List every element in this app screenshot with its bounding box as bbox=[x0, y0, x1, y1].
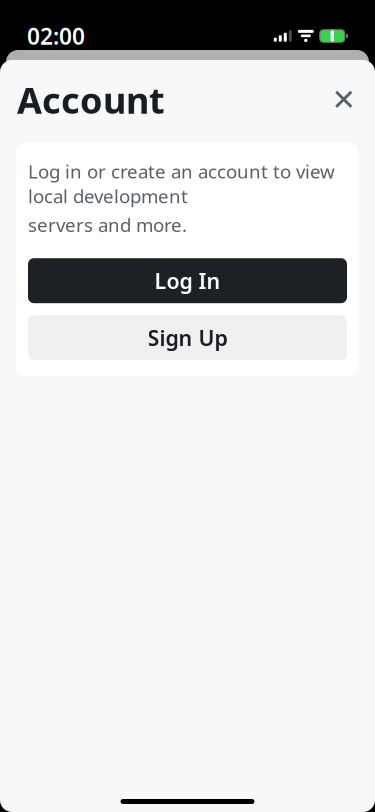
staticText: servers and more. bbox=[28, 212, 187, 237]
staticText: Log In bbox=[154, 266, 220, 295]
staticText: 02:00 bbox=[27, 21, 85, 51]
staticText: Sign Up bbox=[147, 323, 227, 352]
staticText: Log in or create an account to view loca… bbox=[28, 159, 335, 208]
staticText: Account bbox=[17, 76, 165, 124]
staticText: ✕ bbox=[331, 83, 356, 117]
button[interactable]: Close bbox=[322, 78, 366, 122]
button[interactable]: Log In bbox=[28, 258, 347, 303]
button[interactable]: Sign Up bbox=[28, 315, 347, 360]
